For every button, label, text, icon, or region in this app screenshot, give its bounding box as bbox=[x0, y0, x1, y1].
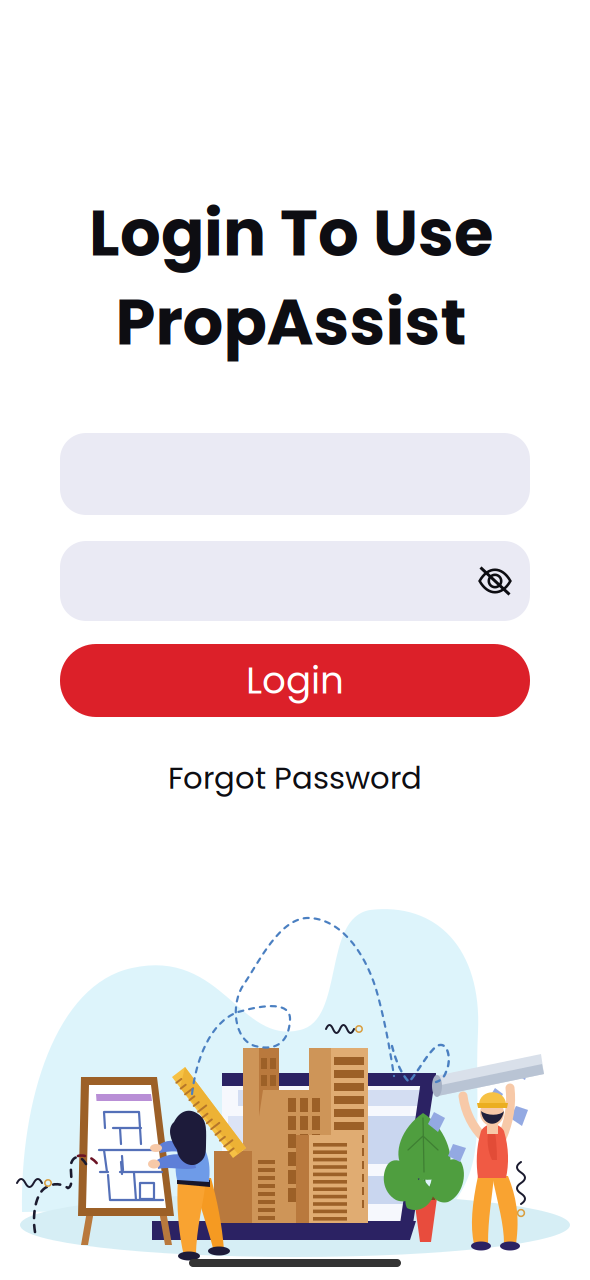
button[interactable]: Show password bbox=[60, 541, 120, 601]
staticText: Forgot Password bbox=[168, 756, 422, 799]
staticText: Login To Use bbox=[89, 188, 493, 278]
staticText: Login bbox=[246, 654, 344, 707]
button[interactable]: Forgot Password bbox=[145, 758, 445, 798]
staticText: PropAssist bbox=[115, 277, 466, 367]
button[interactable]: Login bbox=[60, 644, 530, 717]
